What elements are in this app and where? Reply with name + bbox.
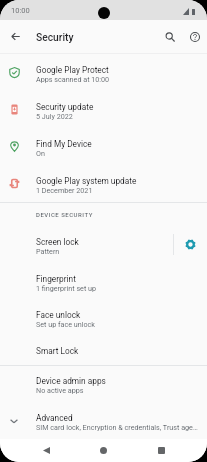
button[interactable]: Find My Device	[0, 128, 207, 165]
button[interactable]: Device admin apps	[0, 366, 207, 402]
staticText: Screen lock	[36, 237, 79, 247]
button[interactable]: Security update	[0, 91, 207, 128]
staticText: Fingerprint	[36, 274, 76, 284]
staticText: Set up face unlock	[36, 320, 95, 328]
staticText: Advanced	[36, 413, 73, 423]
button[interactable]: Google Play system update	[0, 165, 207, 202]
staticText: On	[36, 149, 45, 157]
staticText: 1 December 2021	[36, 186, 93, 194]
staticText: Find My Device	[36, 139, 92, 149]
staticText: Pattern	[36, 247, 60, 255]
staticText: DEVICE SECURITY	[36, 211, 93, 218]
staticText: Apps scanned at 10:00	[36, 75, 110, 83]
staticText: 5 July 2022	[36, 112, 73, 120]
button[interactable]: Screen lock	[0, 226, 207, 263]
button[interactable]: Help	[181, 20, 207, 53]
staticText: SIM card lock, Encryption & credentials,…	[36, 423, 198, 431]
button[interactable]: Face unlock	[0, 300, 207, 336]
staticText: Face unlock	[36, 310, 81, 320]
staticText: Google Play system update	[36, 176, 137, 186]
button[interactable]: Screen lock settings	[174, 226, 207, 263]
staticText: Security update	[36, 102, 94, 112]
button[interactable]: Google Play Protect	[0, 54, 207, 91]
staticText: 10:00	[11, 6, 30, 15]
staticText: 1 fingerprint set up	[36, 284, 97, 292]
staticText: Smart Lock	[36, 346, 79, 356]
button[interactable]: Recent apps	[150, 439, 173, 462]
button[interactable]: Home	[92, 439, 115, 462]
staticText: Device admin apps	[36, 376, 106, 386]
staticText: Google Play Protect	[36, 65, 109, 75]
button[interactable]: Search	[155, 20, 184, 53]
button[interactable]: Advanced	[0, 402, 207, 439]
button[interactable]: Smart Lock	[0, 336, 207, 365]
button[interactable]: Back	[1, 20, 29, 53]
button[interactable]: Fingerprint	[0, 263, 207, 300]
staticText: Security	[36, 31, 74, 43]
staticText: No active apps	[36, 386, 84, 394]
button[interactable]: Back	[35, 439, 58, 462]
